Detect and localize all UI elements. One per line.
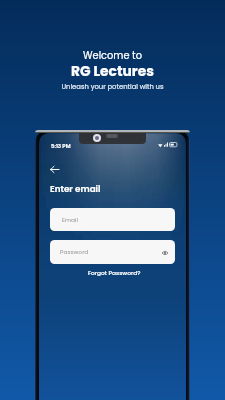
- staticText: Welcome to: [83, 49, 142, 63]
- staticText: RG Lectures: [71, 62, 154, 81]
- staticText: Password: [60, 248, 89, 256]
- staticText: 5:13 PM: [51, 142, 71, 150]
- button[interactable]: Email: [50, 208, 175, 231]
- button[interactable]: Forgot Password?: [88, 269, 141, 277]
- button[interactable]: Show password: [159, 247, 170, 258]
- staticText: Email: [62, 216, 78, 224]
- button[interactable]: Password: [50, 240, 175, 264]
- staticText: Unleash your potential with us: [61, 82, 164, 92]
- staticText: Enter email: [50, 183, 101, 195]
- button[interactable]: Back: [46, 161, 62, 177]
